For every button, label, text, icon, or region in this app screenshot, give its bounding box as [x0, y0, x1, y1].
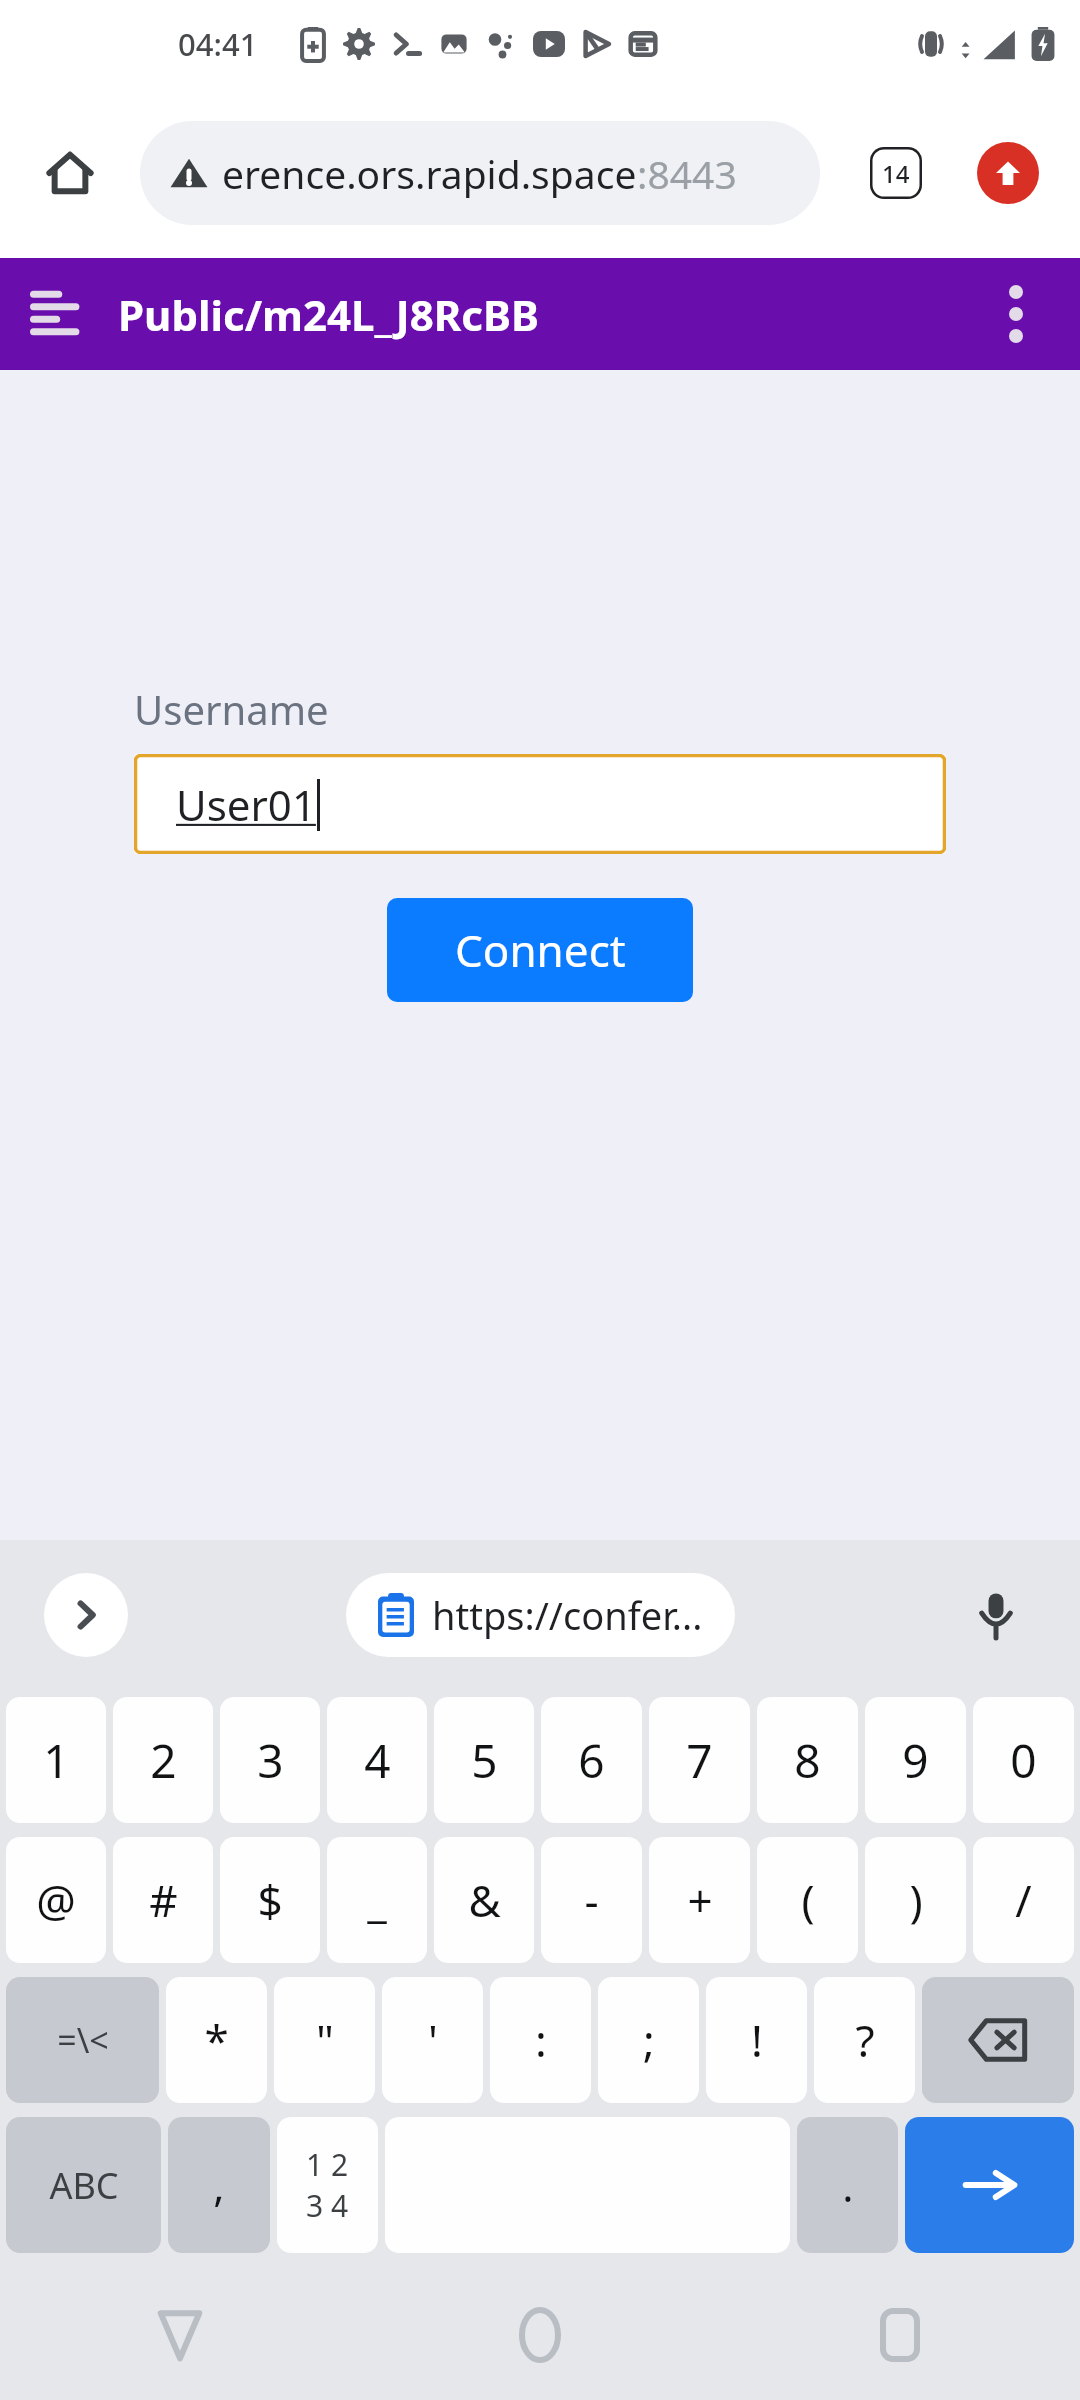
button[interactable]: Numbers	[277, 2117, 378, 2253]
button[interactable]: /	[973, 1837, 1074, 1963]
staticText: 14	[882, 157, 910, 190]
staticText: #	[149, 1870, 178, 1930]
button[interactable]: +	[649, 1837, 750, 1963]
button[interactable]: erence.ors.rapid.space	[140, 121, 820, 225]
button[interactable]: 3	[220, 1697, 320, 1823]
button[interactable]: Voice input	[960, 1579, 1032, 1651]
staticText: 2	[150, 1729, 177, 1792]
staticText: &	[468, 1870, 501, 1930]
button[interactable]: 8	[757, 1697, 858, 1823]
staticText: .	[842, 2157, 854, 2214]
button[interactable]: &	[434, 1837, 534, 1963]
staticText: 7	[686, 1729, 713, 1792]
staticText: Username	[134, 682, 329, 736]
button[interactable]: More options	[978, 276, 1054, 352]
staticText: 3 4	[306, 2185, 349, 2226]
staticText: )	[909, 1870, 923, 1930]
button[interactable]: Tabs	[860, 137, 932, 209]
staticText: +	[687, 1870, 713, 1930]
button[interactable]: Update	[972, 137, 1044, 209]
button[interactable]: 1	[6, 1697, 106, 1823]
button[interactable]: )	[865, 1837, 966, 1963]
staticText: _	[367, 1870, 387, 1930]
staticText: Connect	[455, 920, 626, 980]
staticText: !	[751, 2010, 763, 2070]
button[interactable]: .	[797, 2117, 898, 2253]
staticText: -	[584, 1870, 599, 1930]
staticText: 9	[902, 1729, 929, 1792]
button[interactable]: ?	[814, 1977, 915, 2103]
button[interactable]: _	[327, 1837, 427, 1963]
button[interactable]: ABC	[6, 2117, 161, 2253]
staticText: "	[316, 2010, 334, 2070]
staticText: 1 2	[306, 2144, 349, 2185]
button[interactable]: =\<	[6, 1977, 159, 2103]
staticText: 04:41	[178, 23, 258, 65]
button[interactable]: ,	[168, 2117, 270, 2253]
staticText: 6	[578, 1729, 605, 1792]
staticText: 3	[257, 1729, 284, 1792]
button[interactable]: 5	[434, 1697, 534, 1823]
button[interactable]: *	[166, 1977, 267, 2103]
staticText: *	[204, 2010, 229, 2070]
staticText: /	[1015, 1870, 1032, 1930]
button[interactable]: 6	[541, 1697, 642, 1823]
button[interactable]: Expand toolbar	[44, 1573, 128, 1657]
staticText: User01	[176, 776, 316, 833]
staticText: 0	[1010, 1729, 1037, 1792]
staticText: 8	[794, 1729, 821, 1792]
staticText: https://confer...	[432, 1589, 703, 1641]
staticText: :8443	[637, 147, 737, 200]
staticText: 5	[471, 1729, 498, 1792]
staticText: =\<	[57, 2017, 109, 2063]
button[interactable]: -	[541, 1837, 642, 1963]
staticText: 1	[43, 1729, 70, 1792]
staticText: '	[428, 2010, 438, 2070]
button[interactable]: $	[220, 1837, 320, 1963]
button[interactable]: User01	[134, 754, 946, 854]
button[interactable]: Home	[32, 135, 108, 211]
staticText: ;	[643, 2010, 655, 2070]
staticText: ABC	[49, 2161, 119, 2210]
button[interactable]: 4	[327, 1697, 427, 1823]
button[interactable]: 7	[649, 1697, 750, 1823]
staticText: $	[257, 1870, 283, 1930]
button[interactable]: '	[382, 1977, 483, 2103]
button[interactable]: Home	[485, 2280, 595, 2390]
staticText: (	[801, 1870, 815, 1930]
staticText: ,	[213, 2157, 225, 2214]
button[interactable]: Connect	[387, 898, 693, 1002]
staticText: erence.ors.rapid.space	[222, 147, 637, 200]
button[interactable]: Menu	[16, 274, 96, 354]
button[interactable]: https://confer...	[346, 1573, 735, 1657]
button[interactable]: :	[490, 1977, 591, 2103]
button[interactable]: Back	[125, 2280, 235, 2390]
button[interactable]: 9	[865, 1697, 966, 1823]
staticText: Public/m24L_J8RcBB	[118, 286, 539, 343]
button[interactable]: (	[757, 1837, 858, 1963]
button[interactable]: Backspace	[922, 1977, 1074, 2103]
button[interactable]: Recent apps	[845, 2280, 955, 2390]
button[interactable]: Enter	[905, 2117, 1074, 2253]
button[interactable]: 2	[113, 1697, 213, 1823]
staticText: @	[36, 1870, 76, 1930]
staticText: 4	[364, 1729, 391, 1792]
button[interactable]: @	[6, 1837, 106, 1963]
staticText: ?	[855, 2010, 875, 2070]
button[interactable]: ;	[598, 1977, 699, 2103]
button[interactable]: #	[113, 1837, 213, 1963]
button[interactable]: !	[706, 1977, 807, 2103]
button[interactable]: 0	[973, 1697, 1074, 1823]
staticText: :	[535, 2010, 547, 2070]
button[interactable]: "	[274, 1977, 375, 2103]
